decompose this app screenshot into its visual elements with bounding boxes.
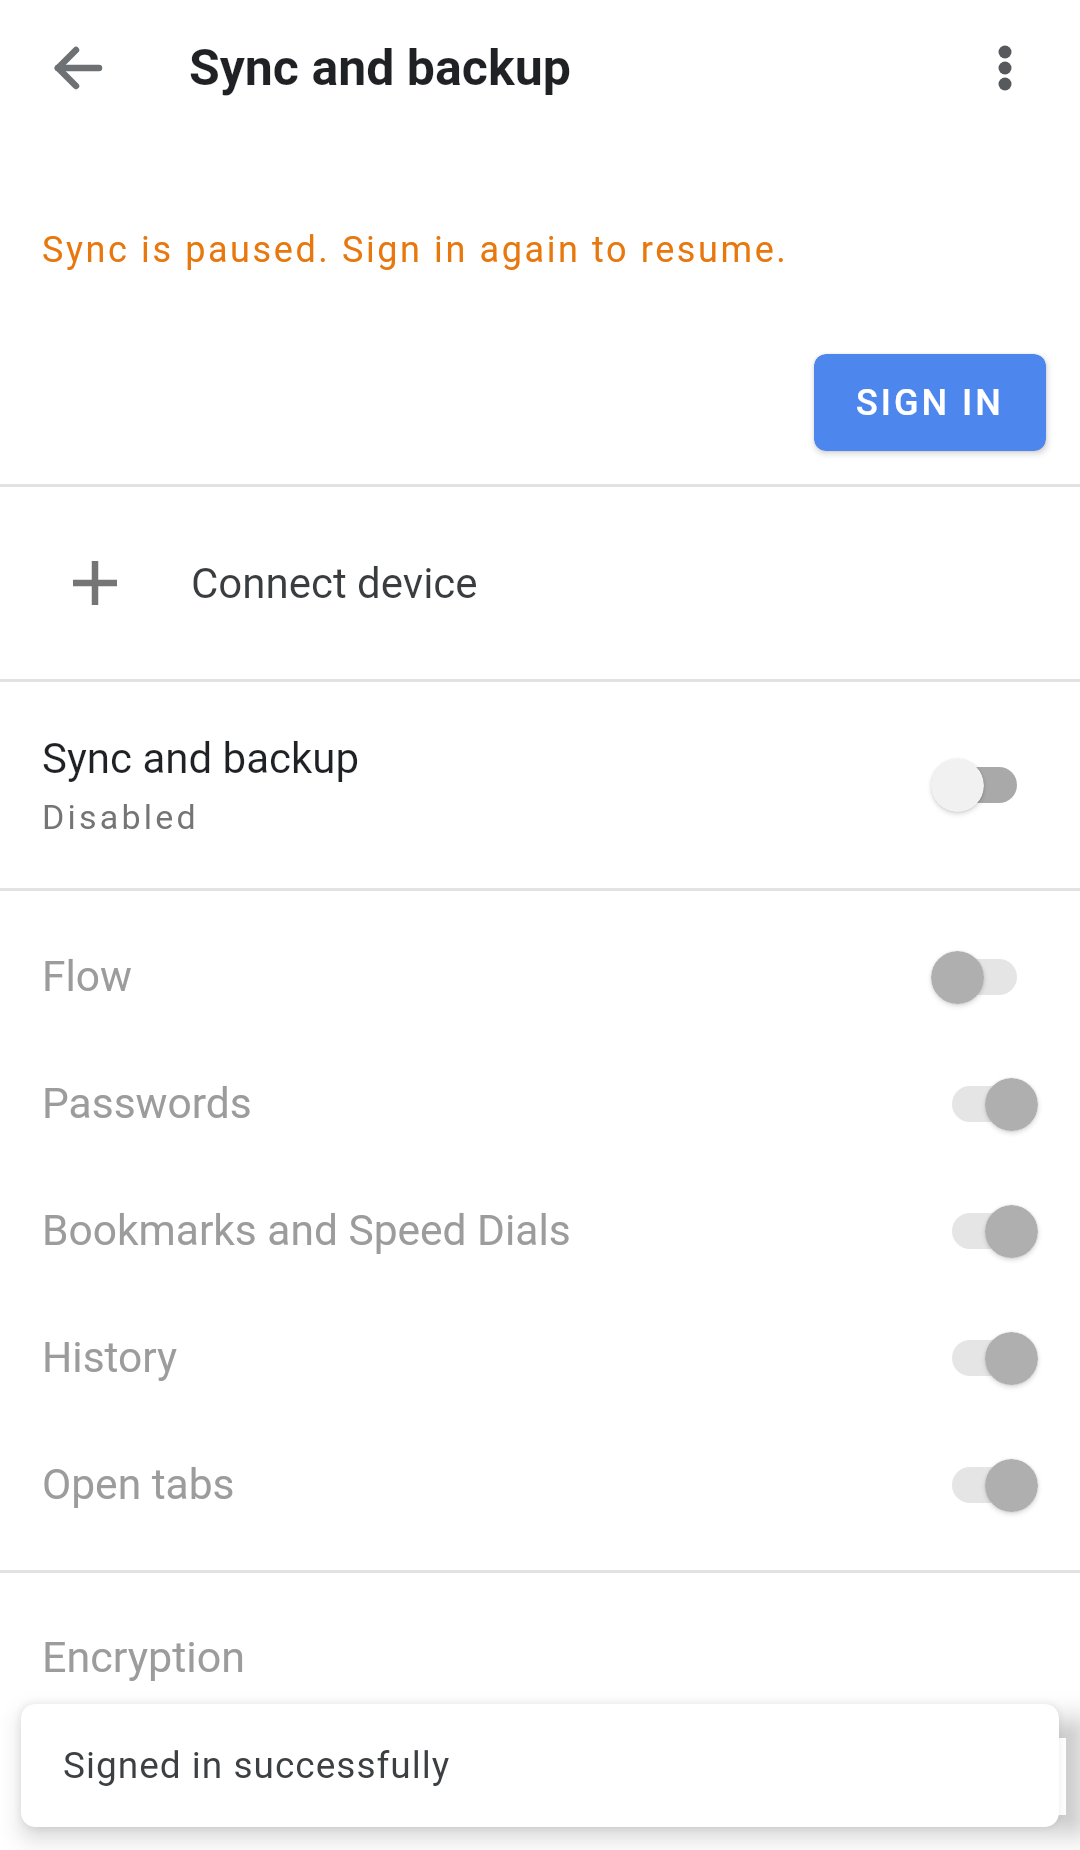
button[interactable]: Flow [0, 913, 1080, 1040]
staticText: Encryption [42, 1632, 245, 1682]
button[interactable]: Sync and backup [0, 682, 1080, 888]
staticText: SIGN IN [856, 382, 1004, 424]
button[interactable]: Connect device [0, 487, 1080, 679]
button[interactable]: Open tabs [0, 1421, 1080, 1548]
button[interactable]: Bookmarks and Speed Dials [0, 1167, 1080, 1294]
button[interactable]: History [0, 1294, 1080, 1421]
button[interactable] [957, 20, 1053, 116]
staticText: History [42, 1333, 931, 1383]
button[interactable] [30, 20, 126, 116]
button[interactable]: Signed in successfully [21, 1704, 1059, 1827]
staticText: Open tabs [42, 1460, 931, 1510]
staticText: Bookmarks and Speed Dials [42, 1206, 931, 1256]
staticText: Disabled [42, 797, 199, 837]
staticText: Passwords [42, 1079, 931, 1129]
button[interactable]: SIGN IN [814, 354, 1046, 451]
button[interactable]: Passwords [0, 1040, 1080, 1167]
staticText: Sync and backup [42, 734, 359, 783]
staticText: Connect device [191, 559, 478, 608]
staticText: Flow [42, 952, 931, 1002]
staticText: Signed in successfully [63, 1744, 451, 1787]
staticText: Sync is paused. Sign in again to resume. [42, 229, 789, 271]
staticText: Sync and backup [189, 39, 571, 98]
